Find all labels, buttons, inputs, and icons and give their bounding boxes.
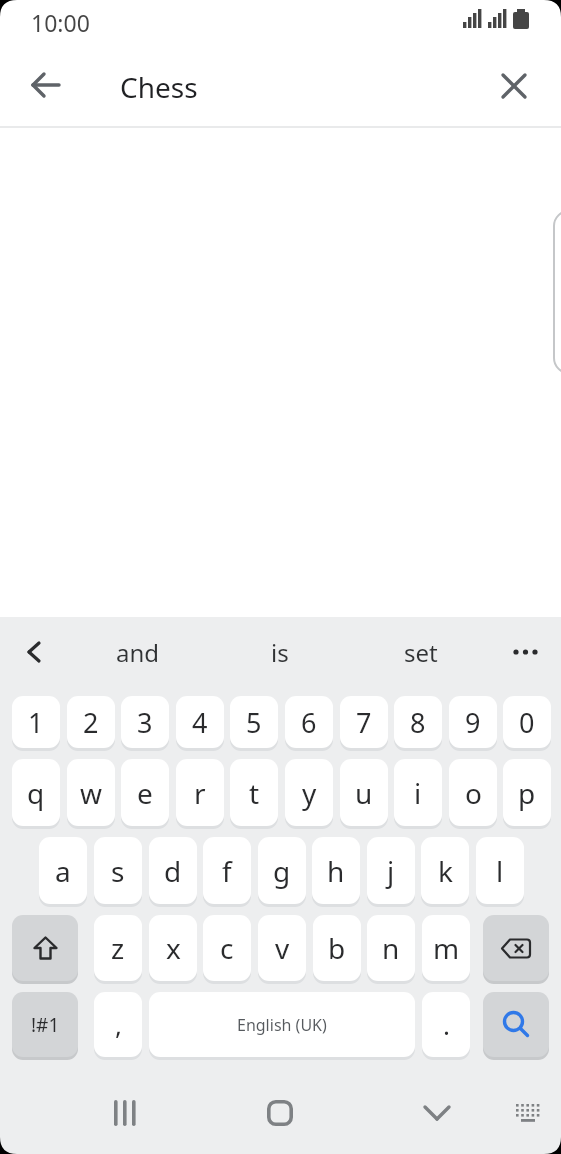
button[interactable]: o (449, 759, 497, 826)
staticText: English (UK) (237, 1014, 327, 1036)
button[interactable]: 9 (449, 696, 497, 748)
button[interactable]: w (67, 759, 115, 826)
button[interactable]: is (220, 630, 340, 674)
button[interactable] (10, 630, 58, 674)
button[interactable]: t (230, 759, 278, 826)
staticText: 1 (28, 704, 44, 741)
button[interactable]: 3 (121, 696, 169, 748)
staticText: v (275, 929, 290, 967)
button[interactable]: r (176, 759, 224, 826)
button[interactable] (483, 915, 549, 981)
staticText: e (137, 774, 153, 812)
button[interactable]: a (39, 837, 87, 904)
staticText: 7 (356, 704, 372, 741)
button[interactable] (412, 1088, 462, 1138)
button[interactable]: y (285, 759, 333, 826)
staticText: 2 (83, 704, 99, 741)
staticText: n (382, 929, 400, 967)
button[interactable] (20, 60, 72, 112)
staticText: , (115, 1007, 122, 1042)
staticText: set (404, 636, 438, 669)
staticText: k (438, 852, 453, 890)
button[interactable]: q (12, 759, 60, 826)
button[interactable] (503, 1088, 553, 1138)
staticText: 5 (246, 704, 262, 741)
button[interactable]: set (361, 630, 481, 674)
staticText: g (273, 852, 291, 890)
button[interactable]: English (UK) (149, 992, 415, 1057)
staticText: a (55, 852, 71, 890)
staticText: 4 (192, 704, 208, 741)
button[interactable]: d (149, 837, 197, 904)
staticText: h (327, 852, 345, 890)
staticText: . (443, 1007, 450, 1042)
staticText: o (465, 774, 482, 812)
button[interactable]: e (121, 759, 169, 826)
staticText: r (194, 774, 206, 812)
button[interactable]: n (367, 915, 415, 981)
button[interactable]: b (313, 915, 361, 981)
staticText: m (433, 929, 460, 967)
staticText: u (355, 774, 373, 812)
button[interactable] (500, 630, 552, 674)
staticText: x (166, 929, 181, 967)
staticText: 6 (301, 704, 317, 741)
button[interactable]: 4 (176, 696, 224, 748)
button[interactable]: 1 (12, 696, 60, 748)
button[interactable]: l (476, 837, 524, 904)
staticText: w (80, 774, 103, 812)
staticText: is (271, 636, 289, 669)
staticText: Chess (120, 68, 198, 106)
staticText: !#1 (31, 1012, 60, 1038)
button[interactable]: v (258, 915, 306, 981)
button[interactable] (12, 915, 78, 981)
button[interactable]: k (421, 837, 469, 904)
button[interactable]: 5 (230, 696, 278, 748)
button[interactable]: . (422, 992, 470, 1057)
staticText: z (111, 929, 125, 967)
button[interactable] (488, 60, 540, 112)
button[interactable]: s (94, 837, 142, 904)
button[interactable] (255, 1088, 305, 1138)
button[interactable]: f (203, 837, 251, 904)
button[interactable]: x (149, 915, 197, 981)
button[interactable]: , (94, 992, 142, 1057)
staticText: s (111, 852, 125, 890)
button[interactable]: i (394, 759, 442, 826)
button[interactable]: and (78, 630, 198, 674)
staticText: l (496, 852, 504, 890)
button[interactable]: j (367, 837, 415, 904)
button[interactable]: 8 (394, 696, 442, 748)
staticText: y (302, 774, 317, 812)
staticText: b (328, 929, 346, 967)
staticText: f (222, 852, 232, 890)
staticText: 0 (519, 704, 535, 741)
button[interactable]: p (503, 759, 551, 826)
staticText: j (387, 852, 395, 890)
button[interactable]: u (340, 759, 388, 826)
staticText: q (27, 774, 45, 812)
staticText: p (518, 774, 536, 812)
staticText: d (164, 852, 182, 890)
staticText: 9 (465, 704, 481, 741)
staticText: 3 (137, 704, 153, 741)
button[interactable]: z (94, 915, 142, 981)
button[interactable]: m (422, 915, 470, 981)
staticText: i (414, 774, 422, 812)
button[interactable]: c (203, 915, 251, 981)
button[interactable]: 7 (340, 696, 388, 748)
staticText: 10:00 (31, 7, 90, 38)
staticText: and (116, 636, 160, 669)
button[interactable]: !#1 (12, 992, 78, 1057)
staticText: t (249, 774, 260, 812)
button[interactable] (483, 992, 549, 1057)
button[interactable] (100, 1088, 150, 1138)
button[interactable]: 0 (503, 696, 551, 748)
button[interactable]: 2 (67, 696, 115, 748)
button[interactable]: h (312, 837, 360, 904)
staticText: 8 (410, 704, 426, 741)
button[interactable]: 6 (285, 696, 333, 748)
staticText: c (220, 929, 234, 967)
button[interactable]: g (258, 837, 306, 904)
